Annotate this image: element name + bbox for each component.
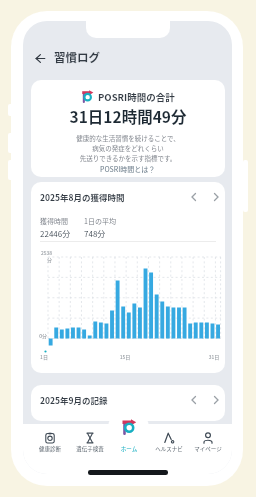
button[interactable]	[189, 424, 227, 456]
button[interactable]	[189, 395, 199, 405]
staticText: POSRI時間とは？	[100, 164, 156, 174]
staticText: 獲得時間	[40, 216, 72, 226]
staticText: 1日	[38, 353, 50, 360]
staticText: 健康診断	[31, 445, 69, 453]
staticText: 2538	[38, 249, 52, 256]
button[interactable]	[110, 424, 148, 456]
button[interactable]	[211, 192, 221, 202]
staticText: 31日	[207, 353, 221, 360]
staticText: 2025年9月の記録	[40, 394, 140, 406]
staticText: ヘルスナビ	[150, 445, 188, 453]
staticText: POSRI時間の合計	[98, 90, 175, 104]
staticText: 分	[38, 256, 52, 263]
button[interactable]	[71, 424, 109, 456]
staticText: 遺伝子検査	[71, 445, 109, 453]
staticText: 15日	[118, 353, 132, 360]
button[interactable]	[211, 395, 221, 405]
button[interactable]: POSRI時間とは？	[91, 162, 165, 175]
staticText: 748分	[84, 228, 114, 240]
staticText: 22446分	[40, 228, 80, 240]
button[interactable]	[150, 424, 188, 456]
button[interactable]	[31, 424, 69, 456]
button[interactable]	[35, 53, 46, 64]
button[interactable]	[189, 192, 199, 202]
staticText: 健康的な生活習慣を続けることで、 病気の発症をどれくらい 先送りできるかを示す指…	[31, 133, 225, 163]
staticText: 31日12時間49分	[31, 105, 225, 127]
staticText: 2025年8月の獲得時間	[40, 191, 150, 203]
staticText: 習慣ログ	[54, 49, 118, 65]
staticText: 1日の平均	[84, 216, 124, 226]
staticText: 0分	[35, 332, 47, 339]
staticText: ホーム	[110, 445, 148, 453]
staticText: マイページ	[189, 445, 227, 453]
